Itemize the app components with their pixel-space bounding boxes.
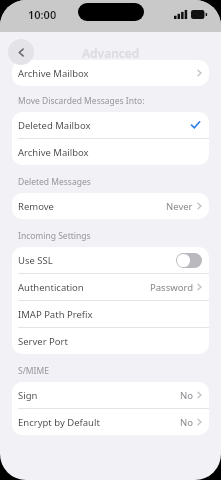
staticText: IMAP Path Prefix (18, 308, 93, 321)
staticText: Password (150, 281, 193, 294)
staticText: No (180, 389, 193, 402)
staticText: Advanced (82, 45, 140, 61)
button[interactable]: Archive Mailbox (12, 139, 209, 165)
staticText: Move Discarded Messages Into: (18, 95, 145, 107)
button[interactable]: Encrypt by Default (12, 409, 209, 435)
button[interactable]: Remove (12, 193, 209, 219)
staticText: Archive Mailbox (18, 146, 89, 159)
staticText: 10:00 (28, 7, 57, 22)
staticText: Incoming Settings (18, 230, 91, 242)
button[interactable]: Archive Mailbox (12, 60, 209, 86)
staticText: S/MIME (18, 365, 49, 377)
staticText: Deleted Messages (18, 176, 91, 188)
button[interactable]: Back (8, 39, 34, 65)
staticText: Remove (18, 200, 54, 213)
button[interactable]: Deleted Mailbox (12, 112, 209, 139)
button[interactable]: IMAP Path Prefix (12, 301, 209, 328)
staticText: Never (166, 200, 193, 213)
button[interactable]: Use SSL toggle (176, 253, 202, 268)
staticText: Archive Mailbox (18, 67, 89, 80)
staticText: Sign (18, 389, 38, 402)
button[interactable]: Sign (12, 382, 209, 409)
staticText: Server Port (18, 335, 68, 348)
button[interactable]: Server Port (12, 328, 209, 354)
button[interactable]: Authentication (12, 274, 209, 301)
staticText: Encrypt by Default (18, 416, 100, 429)
button[interactable]: Use SSL (12, 247, 209, 274)
staticText: No (180, 416, 193, 429)
staticText: Use SSL (18, 254, 53, 267)
staticText: Deleted Mailbox (18, 119, 91, 132)
staticText: Authentication (18, 281, 84, 294)
